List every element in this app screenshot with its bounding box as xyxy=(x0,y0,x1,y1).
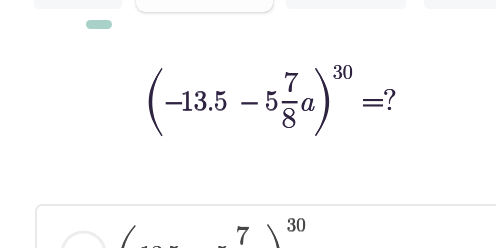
button[interactable] xyxy=(35,204,496,248)
button[interactable] xyxy=(136,0,273,12)
button[interactable] xyxy=(86,20,112,29)
